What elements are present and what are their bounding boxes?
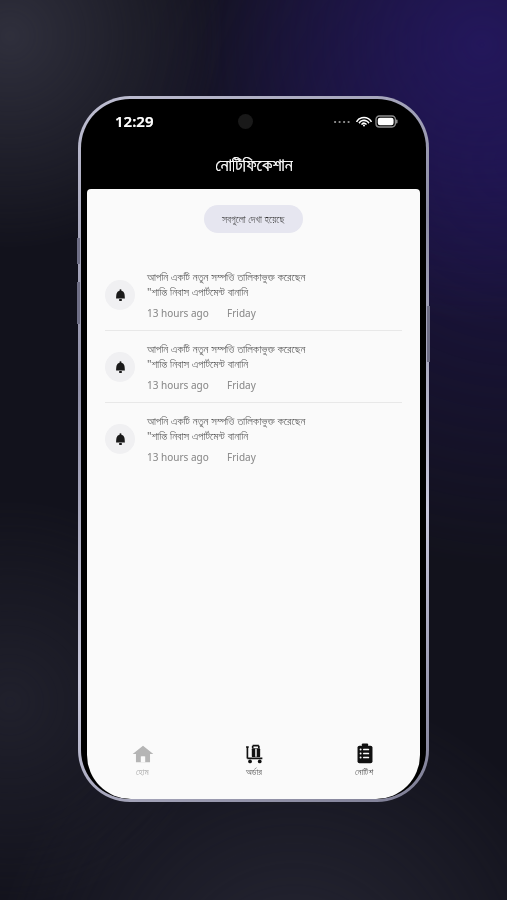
button[interactable]: অর্ডার	[198, 729, 309, 791]
staticText: "শান্তি নিবাস এপার্টমেন্ট বানানি	[147, 356, 249, 371]
staticText: অর্ডার	[246, 768, 262, 777]
staticText: আপনি একটি নতুন সম্পত্তি তালিকাভুক্ত করেছ…	[147, 269, 306, 284]
staticText: 13 hours ago	[147, 450, 209, 464]
staticText: "শান্তি নিবাস এপার্টমেন্ট বানানি	[147, 284, 249, 299]
button[interactable]: সবগুলো দেখা হয়েছে	[204, 205, 303, 233]
button[interactable]: আপনি একটি নতুন সম্পত্তি তালিকাভুক্ত করেছ…	[87, 331, 420, 402]
staticText: নোটিশ	[355, 768, 374, 777]
staticText: 13 hours ago	[147, 306, 209, 320]
staticText: নোটিফিকেশান	[215, 157, 293, 175]
staticText: সবগুলো দেখা হয়েছে	[222, 212, 285, 226]
staticText: Friday	[227, 306, 256, 320]
button[interactable]: আপনি একটি নতুন সম্পত্তি তালিকাভুক্ত করেছ…	[87, 403, 420, 474]
button[interactable]: আপনি একটি নতুন সম্পত্তি তালিকাভুক্ত করেছ…	[87, 259, 420, 330]
staticText: হোম	[136, 768, 149, 777]
staticText: Friday	[227, 378, 256, 392]
staticText: 12:29	[115, 111, 154, 131]
staticText: আপনি একটি নতুন সম্পত্তি তালিকাভুক্ত করেছ…	[147, 341, 306, 356]
staticText: আপনি একটি নতুন সম্পত্তি তালিকাভুক্ত করেছ…	[147, 413, 306, 428]
staticText: 13 hours ago	[147, 378, 209, 392]
button[interactable]: হোম	[87, 729, 198, 791]
staticText: Friday	[227, 450, 256, 464]
button[interactable]: নোটিশ	[309, 729, 420, 791]
staticText: "শান্তি নিবাস এপার্টমেন্ট বানানি	[147, 428, 249, 443]
